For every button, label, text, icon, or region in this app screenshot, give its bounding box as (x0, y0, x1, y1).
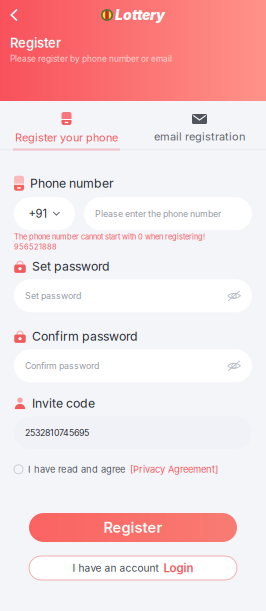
staticText: Please register by phone number or email (10, 54, 172, 64)
button[interactable]: I have an account (29, 556, 237, 580)
staticText: Register your phone (15, 131, 118, 144)
staticText: Phone number (30, 176, 114, 191)
button[interactable]: email registration (133, 102, 266, 149)
staticText: Confirm password (25, 360, 99, 371)
staticText: Lottery (115, 6, 165, 23)
staticText: email registration (154, 130, 245, 143)
staticText: I have read and agree (28, 464, 125, 475)
staticText: 956521888 (14, 242, 57, 251)
staticText: Register (10, 35, 61, 51)
staticText: +91 (28, 207, 47, 221)
staticText: Set password (25, 290, 81, 301)
staticText: Invite code (32, 396, 95, 411)
staticText: Set password (32, 259, 110, 274)
staticText: Register (103, 519, 162, 536)
staticText: 2532810745695 (25, 427, 89, 438)
staticText: [Privacy Agreement] (130, 464, 218, 475)
button[interactable]: +91 (14, 197, 75, 230)
staticText: Login (163, 561, 193, 575)
button[interactable]: Register (29, 513, 237, 542)
button[interactable]: Back (0, 3, 266, 27)
button[interactable]: I have read and agree (14, 460, 252, 478)
staticText: Confirm password (32, 329, 138, 344)
staticText: Please enter the phone number (95, 208, 221, 219)
staticText: The phone number cannot start with 0 whe… (14, 232, 205, 241)
staticText: I have an account (72, 562, 158, 574)
button[interactable]: Register your phone (0, 101, 133, 150)
